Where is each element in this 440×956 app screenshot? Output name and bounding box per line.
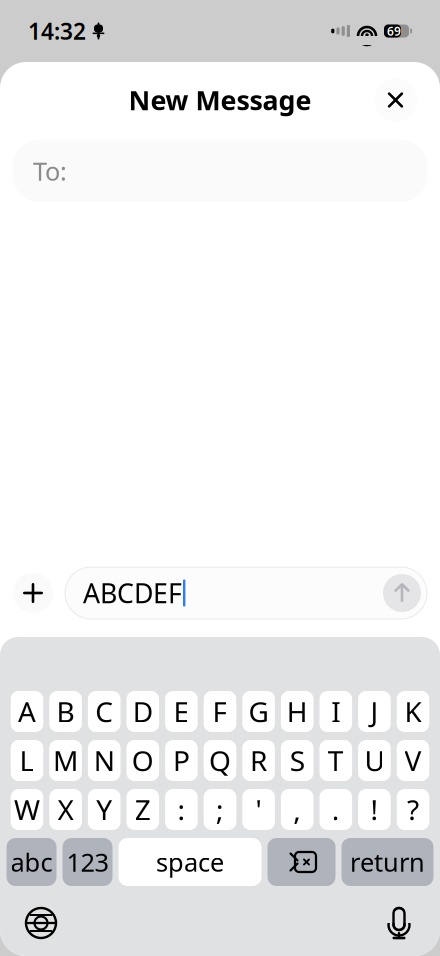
button[interactable]: U	[358, 740, 391, 781]
staticText: To:	[33, 154, 67, 188]
staticText: E	[173, 693, 189, 730]
button[interactable]: M	[49, 740, 82, 781]
button[interactable]: Add attachment	[13, 573, 53, 613]
button[interactable]: W	[11, 789, 43, 830]
staticText: !	[370, 791, 378, 828]
staticText: 14:32	[28, 16, 86, 46]
staticText: H	[287, 693, 308, 730]
staticText: 123	[66, 845, 108, 879]
staticText: return	[350, 845, 425, 879]
staticText: ,	[293, 791, 301, 828]
staticText: S	[290, 742, 305, 779]
button[interactable]: I	[319, 691, 352, 732]
button[interactable]: X	[49, 789, 82, 830]
button[interactable]: return	[341, 838, 433, 886]
button[interactable]: Q	[204, 740, 236, 781]
staticText: Y	[96, 791, 112, 828]
button[interactable]: Send	[383, 574, 421, 612]
button[interactable]: T	[319, 740, 352, 781]
staticText: ;	[216, 791, 224, 828]
button[interactable]: Z	[126, 789, 159, 830]
staticText: .	[332, 791, 340, 828]
staticText: ABCDEF	[83, 575, 182, 611]
staticText: abc	[10, 845, 52, 879]
button[interactable]: D	[126, 691, 159, 732]
button[interactable]: K	[397, 691, 429, 732]
staticText: R	[250, 742, 267, 779]
button[interactable]: ,	[281, 789, 313, 830]
button[interactable]: V	[397, 740, 429, 781]
button[interactable]: N	[88, 740, 120, 781]
staticText: M	[53, 742, 78, 779]
staticText: P	[173, 742, 190, 779]
button[interactable]: .	[319, 789, 352, 830]
button[interactable]: G	[242, 691, 275, 732]
button[interactable]: S	[281, 740, 313, 781]
button[interactable]: 123	[62, 838, 112, 886]
staticText: J	[370, 693, 378, 730]
button[interactable]: :	[165, 789, 198, 830]
button[interactable]: B	[49, 691, 82, 732]
staticText: A	[18, 693, 36, 730]
staticText: L	[19, 742, 34, 779]
staticText: ?	[407, 791, 419, 828]
button[interactable]: abc	[6, 838, 56, 886]
button[interactable]: ;	[204, 789, 236, 830]
staticText: O	[132, 742, 154, 779]
button[interactable]: To:	[13, 140, 427, 202]
staticText: U	[364, 742, 384, 779]
staticText: New Message	[128, 82, 311, 118]
button[interactable]: E	[165, 691, 198, 732]
staticText: B	[57, 693, 75, 730]
staticText: :	[177, 791, 185, 828]
staticText: W	[14, 791, 40, 828]
button[interactable]: F	[204, 691, 236, 732]
staticText: V	[404, 742, 421, 779]
button[interactable]: !	[358, 789, 391, 830]
button[interactable]: space	[118, 838, 261, 886]
staticText: '	[256, 791, 262, 828]
button[interactable]: A	[11, 691, 43, 732]
staticText: Z	[135, 791, 151, 828]
staticText: K	[404, 693, 421, 730]
button[interactable]: O	[126, 740, 159, 781]
staticText: 69	[387, 23, 401, 39]
staticText: X	[58, 791, 74, 828]
button[interactable]: H	[281, 691, 313, 732]
staticText: N	[94, 742, 115, 779]
staticText: Q	[209, 742, 231, 779]
staticText: G	[249, 693, 269, 730]
staticText: T	[328, 742, 344, 779]
button[interactable]: Close	[374, 78, 417, 121]
button[interactable]: Change keyboard	[18, 900, 64, 946]
button[interactable]: R	[242, 740, 275, 781]
staticText: I	[331, 693, 340, 730]
button[interactable]: L	[11, 740, 43, 781]
staticText: space	[156, 845, 224, 879]
button[interactable]: C	[88, 691, 120, 732]
button[interactable]: '	[242, 789, 275, 830]
button[interactable]: Y	[88, 789, 120, 830]
button[interactable]: Delete	[267, 838, 335, 886]
staticText: F	[212, 693, 227, 730]
staticText: C	[95, 693, 113, 730]
button[interactable]: P	[165, 740, 198, 781]
button[interactable]: Dictate	[376, 900, 422, 946]
button[interactable]: J	[358, 691, 391, 732]
button[interactable]: ?	[397, 789, 429, 830]
staticText: D	[133, 693, 153, 730]
